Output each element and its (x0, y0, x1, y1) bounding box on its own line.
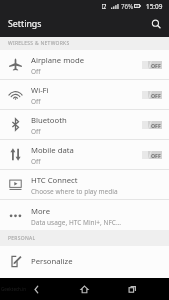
button[interactable]: Off (142, 151, 162, 159)
staticText: Off (31, 67, 41, 76)
staticText: WIRELESS & NETWORKS (8, 40, 70, 47)
staticText: Bluetooth (31, 115, 67, 125)
button[interactable]: Mobile data (0, 140, 169, 169)
button[interactable]: Off (142, 61, 162, 69)
button[interactable]: Personalize (0, 246, 169, 277)
staticText: 15:09 (146, 2, 163, 11)
staticText: Personalize (31, 256, 73, 266)
staticText: Settings (8, 18, 42, 30)
staticText: Off (31, 127, 41, 136)
button[interactable]: Off (142, 91, 162, 99)
staticText: Off (31, 97, 41, 106)
staticText: OFF (151, 122, 161, 129)
staticText: Choose where to play media (31, 187, 118, 196)
button[interactable]: More (0, 200, 169, 230)
staticText: Mobile data (31, 145, 74, 155)
button[interactable]: Recents (108, 278, 156, 300)
button[interactable]: Search (144, 11, 169, 37)
staticText: Data usage, HTC Mini+, NFC... (31, 218, 122, 227)
button[interactable]: Bluetooth (0, 110, 169, 139)
staticText: OFF (151, 152, 161, 159)
staticText: OFF (151, 92, 161, 99)
button[interactable]: Off (142, 121, 162, 129)
staticText: Wi-Fi (31, 85, 49, 95)
staticText: 76% (121, 2, 134, 10)
staticText: More (31, 206, 50, 216)
staticText: Airplane mode (31, 55, 85, 65)
staticText: PERSONAL (8, 235, 36, 242)
button[interactable]: HTC Connect (0, 170, 169, 199)
staticText: OFF (151, 62, 161, 69)
button[interactable]: Wi-Fi (0, 80, 169, 109)
button[interactable]: Airplane mode (0, 50, 169, 79)
staticText: HTC Connect (31, 175, 78, 185)
button[interactable]: Home (60, 278, 108, 300)
staticText: Off (31, 157, 41, 166)
button[interactable]: Back (13, 278, 60, 300)
staticText: Geektech.in (1, 286, 27, 292)
